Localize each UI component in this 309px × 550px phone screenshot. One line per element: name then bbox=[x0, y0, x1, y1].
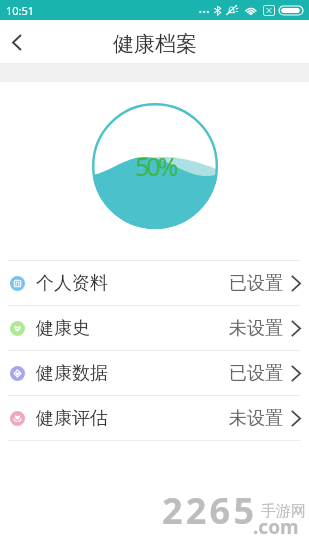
button[interactable]: 健康数据 bbox=[0, 351, 309, 395]
staticText: 健康评估 bbox=[36, 407, 108, 430]
staticText: 手游网 bbox=[261, 502, 306, 521]
button[interactable]: 个人资料 bbox=[0, 261, 309, 305]
staticText: 未设置 bbox=[229, 317, 283, 340]
staticText: 健康数据 bbox=[36, 362, 108, 385]
button[interactable]: 健康史 bbox=[0, 306, 309, 350]
staticText: 已设置 bbox=[229, 362, 283, 385]
staticText: 2265 bbox=[162, 486, 258, 535]
button[interactable]: 健康评估 bbox=[0, 396, 309, 440]
staticText: 50% bbox=[135, 149, 176, 183]
staticText: 10:51 bbox=[6, 3, 35, 18]
staticText: .com bbox=[253, 514, 299, 540]
staticText: 健康史 bbox=[36, 317, 90, 340]
button[interactable]: Back bbox=[0, 22, 37, 62]
staticText: 健康档案 bbox=[113, 31, 197, 57]
staticText: 已设置 bbox=[229, 272, 283, 295]
staticText: 未设置 bbox=[229, 407, 283, 430]
staticText: 个人资料 bbox=[36, 272, 108, 295]
